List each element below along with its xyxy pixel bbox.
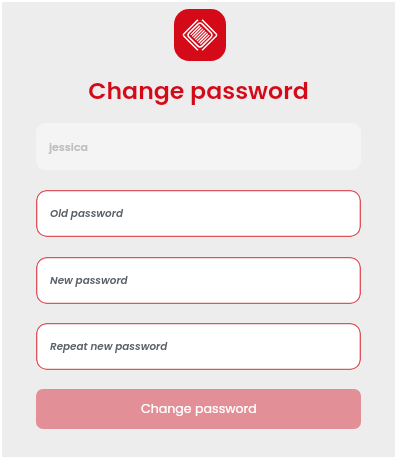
staticText: New password — [50, 273, 128, 288]
button[interactable]: New password — [36, 257, 361, 304]
button[interactable]: Old password — [36, 190, 361, 237]
button[interactable]: Repeat new password — [36, 323, 361, 370]
staticText: Repeat new password — [50, 339, 168, 354]
staticText: Old password — [50, 206, 123, 221]
staticText: Change password — [2, 74, 395, 107]
staticText: Change password — [141, 400, 257, 418]
button[interactable]: Username jessica — [36, 123, 361, 170]
button[interactable]: App logo — [174, 9, 226, 61]
staticText: jessica — [49, 139, 88, 154]
button[interactable]: Change password — [36, 389, 361, 429]
